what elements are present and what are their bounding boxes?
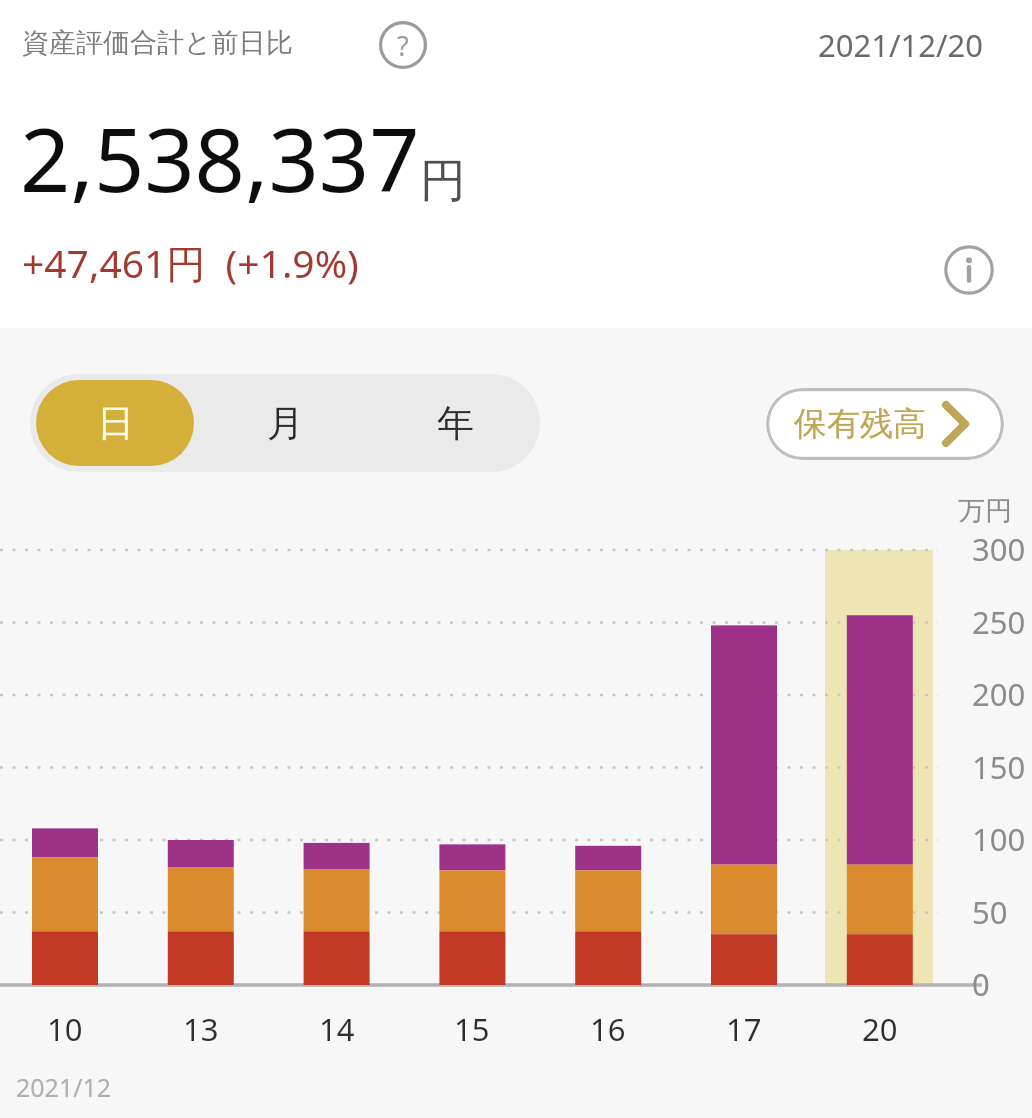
staticText: 日 [97,400,134,447]
button[interactable]: 年 [370,374,540,472]
staticText: 2,538,337 [20,98,420,218]
staticText: 保有残高 [794,403,926,445]
staticText: 150 [972,746,1026,788]
staticText: 円 [420,152,466,210]
staticText: 0 [972,963,990,1005]
staticText: 2021/12 [16,1070,112,1104]
staticText: 20 [862,1008,898,1050]
staticText: 250 [972,601,1026,643]
staticText: 16 [590,1008,626,1050]
staticText: ? [397,27,409,64]
staticText: 17 [726,1008,762,1050]
staticText: 資産評価合計と前日比 [22,26,293,60]
staticText: 2021/12/20 [818,24,983,66]
staticText: +47,461円 (+1.9%) [22,236,359,289]
button[interactable]: Help [379,21,427,69]
button[interactable]: 月 [200,374,370,472]
staticText: 13 [183,1008,219,1050]
staticText: 300 [972,528,1026,570]
button[interactable]: Information [944,245,994,295]
staticText: 14 [319,1008,355,1050]
staticText: 万円 [958,494,1012,528]
staticText: 200 [972,673,1026,715]
staticText: 月 [267,400,304,447]
staticText: 100 [972,818,1026,860]
button[interactable]: 日 [36,380,194,466]
button[interactable]: 保有残高 [766,388,1004,460]
staticText: 15 [454,1008,490,1050]
staticText: 50 [972,891,1008,933]
staticText: 年 [437,400,474,447]
staticText: 10 [47,1008,83,1050]
